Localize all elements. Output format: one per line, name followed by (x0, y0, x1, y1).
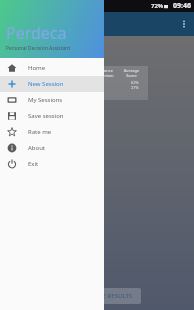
button[interactable]: SEE RESULTS (88, 288, 141, 304)
staticText: Save session (28, 112, 64, 120)
staticText: New Session (28, 80, 64, 88)
staticText: About (28, 144, 46, 152)
button[interactable]: About (0, 140, 104, 156)
staticText: 72% (151, 2, 164, 10)
staticText: SEE RESULTS (96, 292, 133, 300)
button[interactable]: Rate me (0, 124, 104, 140)
button[interactable]: My Sessions (0, 92, 104, 108)
button[interactable]: New Session (0, 76, 104, 92)
staticText: Home (28, 64, 46, 72)
staticText: Importance of Criteriam (91, 68, 118, 78)
staticText: Perdeca (6, 22, 67, 44)
staticText: 09:46 (173, 1, 191, 11)
staticText: 62% (131, 80, 139, 85)
button[interactable]: Save session (0, 108, 104, 124)
staticText: Personal Decision Assistant (6, 45, 71, 52)
staticText: Exit (28, 160, 39, 168)
staticText: 27% (131, 85, 139, 90)
button[interactable]: Exit (0, 156, 104, 172)
button[interactable]: Home (0, 60, 104, 76)
button[interactable]: More options (174, 14, 194, 34)
staticText: My Sessions (28, 96, 63, 104)
staticText: Average Score (118, 68, 145, 78)
staticText: Rate me (28, 128, 52, 136)
staticText: New Session (8, 42, 85, 60)
